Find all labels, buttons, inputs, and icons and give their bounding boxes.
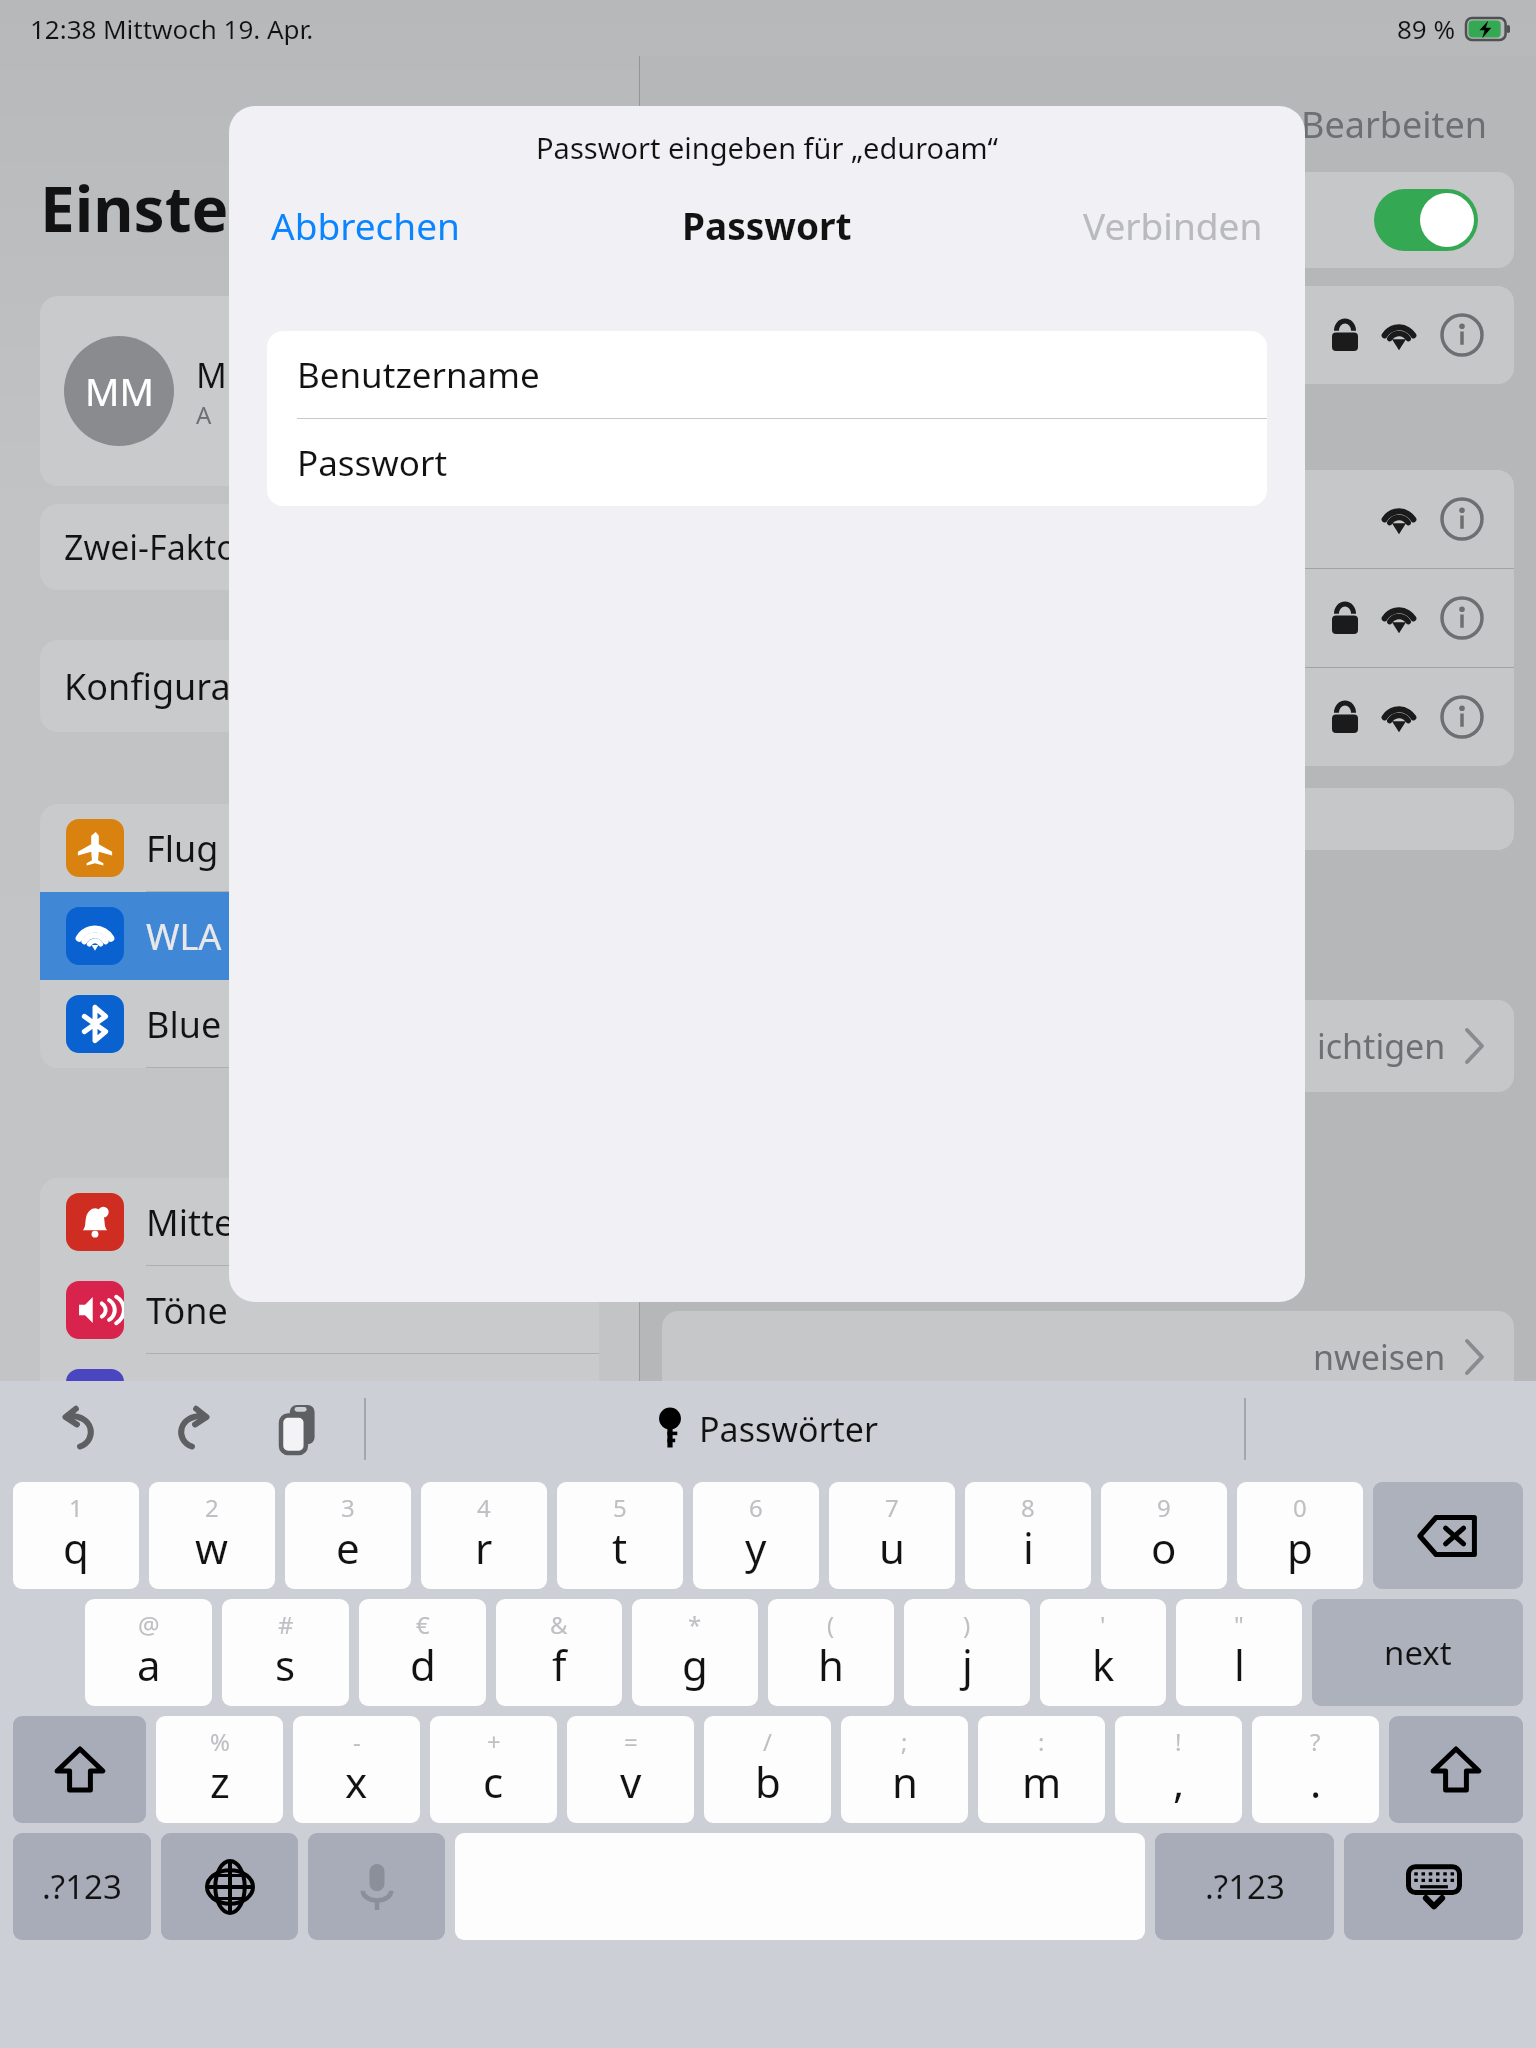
button[interactable]: ! [1115,1716,1242,1823]
button[interactable]: WLA [40,892,599,980]
button[interactable]: + [430,1716,557,1823]
staticText: . [1310,1753,1322,1810]
staticText: g [682,1636,708,1693]
button[interactable]: Töne [40,1266,599,1354]
staticText: Blue [146,1000,222,1049]
button[interactable]: Benutzername [267,331,1267,418]
button[interactable]: : [978,1716,1105,1823]
button[interactable]: Bearbeiten [1301,100,1488,149]
button[interactable]: Passwörter [657,1406,879,1452]
button[interactable] [1374,189,1478,251]
button[interactable]: = [567,1716,694,1823]
button[interactable]: .?123 [1155,1833,1334,1940]
button[interactable]: 7 [829,1482,955,1589]
button[interactable]: Hide keyboard [1344,1833,1523,1940]
staticText: y [745,1519,767,1576]
staticText: c [483,1753,504,1810]
button[interactable]: Shift [1389,1716,1523,1823]
button[interactable]: Abbrechen [271,200,460,250]
staticText: p [1287,1519,1313,1576]
button[interactable]: Info [662,668,1514,766]
button[interactable]: 0 [1237,1482,1363,1589]
button[interactable] [662,788,1514,850]
button[interactable]: 2 [149,1482,275,1589]
button[interactable]: - [293,1716,420,1823]
button[interactable]: % [156,1716,283,1823]
staticText: " [1234,1608,1244,1641]
button[interactable]: Konfigurat [40,640,599,732]
staticText: x [345,1753,368,1810]
staticText: ? [1310,1725,1321,1758]
button[interactable]: Blue [40,980,599,1068]
staticText: 8 [1021,1491,1035,1524]
button[interactable]: Verbinden [1083,200,1263,250]
button[interactable]: 9 [1101,1482,1227,1589]
button[interactable]: * [632,1599,758,1706]
staticText: & [550,1608,568,1641]
button[interactable]: Info [1440,596,1484,640]
button[interactable]: ichtigen [662,1000,1514,1092]
button[interactable]: 5 [557,1482,683,1589]
button[interactable]: Language [161,1833,298,1940]
staticText: Benutzername [297,351,540,399]
button[interactable]: Paste [270,1398,332,1460]
button[interactable]: 6 [693,1482,819,1589]
staticText: : [1038,1725,1045,1758]
staticText: ' [1100,1608,1106,1641]
button[interactable]: ? [1252,1716,1379,1823]
button[interactable]: Dictate [308,1833,445,1940]
button[interactable]: Info [662,286,1514,384]
button[interactable]: Info [1440,497,1484,541]
staticText: 4 [477,1491,491,1524]
button[interactable]: € [359,1599,486,1706]
button[interactable]: ; [841,1716,968,1823]
button[interactable]: ' [1040,1599,1166,1706]
button[interactable]: Foku [40,1354,599,1442]
button[interactable]: 1 [13,1482,139,1589]
button[interactable]: ( [768,1599,894,1706]
staticText: Passwort [297,439,448,487]
staticText: r [475,1519,493,1576]
button[interactable]: next [1312,1599,1523,1706]
button[interactable]: Info [1440,695,1484,739]
button[interactable]: Mitte [40,1178,599,1266]
staticText: 2 [205,1491,219,1524]
staticText: 3 [341,1491,355,1524]
staticText: .?123 [1205,1864,1285,1909]
button[interactable]: Info [1440,313,1484,357]
button[interactable]: / [704,1716,831,1823]
staticText: k [1092,1636,1115,1693]
button[interactable]: Info [662,470,1514,568]
button[interactable]: # [222,1599,349,1706]
button[interactable]: Zwei-Faktor [40,504,599,590]
button[interactable]: Backspace [1373,1482,1523,1589]
staticText: - [353,1725,361,1758]
button[interactable]: Undo [48,1398,110,1460]
staticText: Konfigurat [64,662,244,711]
button[interactable]: 3 [285,1482,411,1589]
button[interactable]: 4 [421,1482,547,1589]
staticText: 0 [1293,1491,1307,1524]
staticText: h [818,1636,844,1693]
staticText: WLA [146,912,222,961]
button[interactable]: & [496,1599,622,1706]
button[interactable]: " [1176,1599,1302,1706]
button[interactable]: MM [40,296,599,486]
button[interactable]: Passwort [267,419,1267,506]
button[interactable]: @ [85,1599,212,1706]
staticText: nweisen [1313,1334,1446,1380]
staticText: v [620,1753,642,1810]
button[interactable]: Shift [13,1716,146,1823]
button[interactable]: Flug [40,804,599,892]
staticText: , [1173,1753,1185,1810]
button[interactable]: Bildschirmzeit [40,1442,599,1530]
staticText: i [1023,1519,1034,1576]
button[interactable]: Redo [162,1398,224,1460]
button[interactable]: nweisen [662,1311,1514,1403]
button[interactable]: 8 [965,1482,1091,1589]
button[interactable]: ) [904,1599,1030,1706]
button[interactable]: Info [662,569,1514,667]
button[interactable]: .?123 [13,1833,151,1940]
